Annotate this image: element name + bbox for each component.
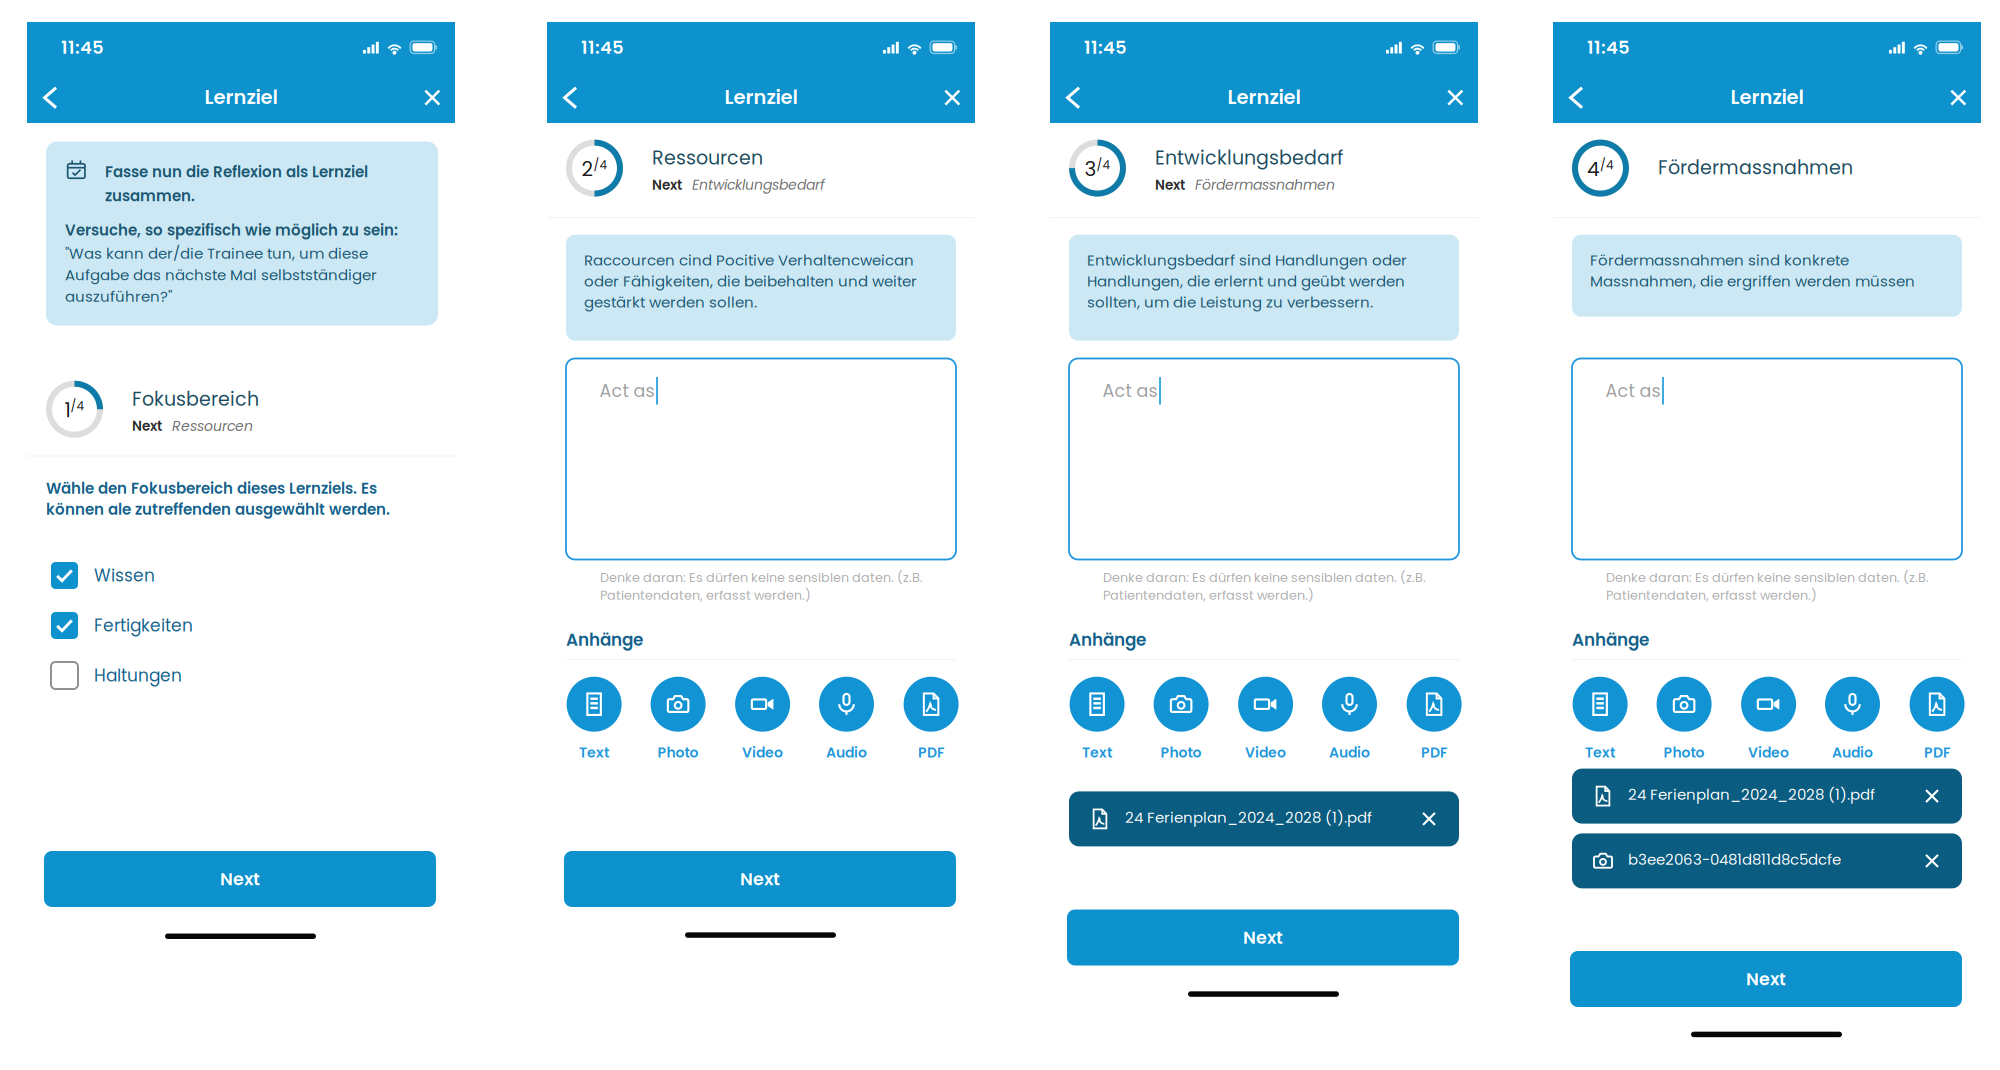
staticText: Entwicklungsbedarf sind Handlungen oder … — [1087, 250, 1407, 313]
staticText: Audio — [1329, 743, 1370, 762]
staticText: /4 — [1600, 157, 1614, 173]
staticText: Versuche, so spezifisch wie möglich zu s… — [65, 220, 398, 241]
staticText: Act as — [1103, 379, 1158, 403]
staticText: Next — [1155, 175, 1185, 194]
button[interactable]: Text — [1057, 676, 1137, 763]
button[interactable]: PDF — [1897, 676, 1977, 763]
staticText: 24 Ferienplan_2024_2028 (1).pdf — [1628, 784, 1875, 805]
staticText: Denke daran: Es dürfen keine sensiblen d… — [1103, 568, 1426, 604]
staticText: Wähle den Fokusbereich dieses Lernziels.… — [46, 478, 390, 520]
button[interactable]: Back — [28, 76, 72, 120]
button[interactable]: Audio — [1812, 676, 1892, 763]
staticText: Video — [1245, 743, 1286, 762]
staticText: Lernziel — [204, 83, 277, 111]
staticText: Text — [579, 743, 609, 762]
button[interactable]: Photo — [1141, 676, 1221, 763]
staticText: Photo — [1664, 743, 1705, 762]
button[interactable]: Photo — [638, 676, 718, 763]
staticText: Lernziel — [1227, 83, 1300, 111]
staticText: PDF — [1421, 743, 1447, 762]
staticText: /4 — [70, 398, 84, 414]
staticText: Entwicklungsbedarf — [692, 175, 825, 195]
staticText: 11:45 — [61, 35, 104, 60]
staticText: Next — [740, 867, 780, 891]
staticText: Video — [742, 743, 783, 762]
staticText: Audio — [826, 743, 867, 762]
staticText: Next — [132, 417, 162, 435]
button[interactable]: Next — [564, 851, 956, 907]
staticText: Next — [1243, 925, 1283, 950]
button[interactable]: Audio — [1309, 676, 1389, 763]
button[interactable]: PDF — [1394, 676, 1474, 763]
staticText: Text — [1082, 743, 1112, 762]
staticText: Raccourcen cind Pocitive Verhaltencweica… — [584, 250, 917, 313]
staticText: Fördermassnahmen — [1658, 154, 1853, 181]
staticText: 1 — [64, 396, 70, 424]
staticText: Entwicklungsbedarf — [1155, 145, 1343, 171]
staticText: Fokusbereich — [132, 386, 259, 412]
button[interactable]: Remove attachment — [1414, 809, 1444, 829]
staticText: 3 — [1084, 155, 1096, 183]
staticText: "Was kann der/die Trainee tun, um diese … — [65, 243, 377, 307]
button[interactable]: Back — [548, 76, 592, 120]
staticText: Act as — [600, 379, 655, 403]
staticText: 11:45 — [1587, 35, 1630, 60]
button[interactable]: Haltungen — [51, 653, 381, 697]
button[interactable]: Text — [554, 676, 634, 763]
staticText: Next — [652, 175, 682, 194]
button[interactable]: Next — [1067, 909, 1459, 965]
staticText: Lernziel — [724, 83, 797, 111]
button[interactable]: Next — [1570, 951, 1962, 1007]
staticText: b3ee2063-0481d811d8c5dcfe — [1628, 849, 1841, 870]
staticText: Video — [1748, 743, 1789, 762]
button[interactable]: Close — [410, 76, 454, 120]
button[interactable]: Wissen — [51, 553, 381, 597]
staticText: Text — [1585, 743, 1615, 762]
button[interactable]: Back — [1051, 76, 1095, 120]
staticText: Lernziel — [1730, 83, 1803, 111]
staticText: /4 — [593, 157, 607, 173]
button[interactable]: Close — [1936, 76, 1980, 120]
staticText: Ressourcen — [652, 145, 763, 171]
staticText: Fasse nun die Reflexion als Lernziel zus… — [105, 161, 368, 206]
button[interactable]: Next — [44, 851, 436, 907]
staticText: Photo — [1161, 743, 1202, 762]
button[interactable]: Remove attachment — [1917, 851, 1947, 871]
staticText: Fertigkeiten — [94, 614, 193, 637]
staticText: Fördermassnahmen — [1195, 175, 1335, 195]
staticText: Denke daran: Es dürfen keine sensiblen d… — [1606, 568, 1929, 604]
staticText: Audio — [1832, 743, 1873, 762]
button[interactable]: Close — [930, 76, 974, 120]
staticText: Wissen — [94, 564, 155, 587]
staticText: 4 — [1587, 155, 1600, 183]
button[interactable]: Remove attachment — [1917, 786, 1947, 806]
button[interactable]: Photo — [1644, 676, 1724, 763]
staticText: /4 — [1096, 157, 1110, 173]
staticText: 11:45 — [581, 35, 624, 60]
staticText: Haltungen — [94, 664, 182, 687]
staticText: PDF — [918, 743, 944, 762]
staticText: Anhänge — [566, 628, 643, 651]
staticText: Next — [220, 867, 260, 891]
staticText: 2 — [581, 155, 593, 183]
staticText: Photo — [658, 743, 699, 762]
staticText: PDF — [1924, 743, 1950, 762]
button[interactable]: Text — [1560, 676, 1640, 763]
staticText: Anhänge — [1069, 628, 1146, 651]
button[interactable]: Fertigkeiten — [51, 603, 381, 647]
staticText: 11:45 — [1084, 35, 1127, 60]
staticText: Anhänge — [1572, 628, 1649, 651]
button[interactable]: Back — [1554, 76, 1598, 120]
button[interactable]: Video — [1729, 676, 1809, 763]
staticText: Next — [1746, 967, 1786, 991]
button[interactable]: Video — [1226, 676, 1306, 763]
button[interactable]: Audio — [806, 676, 886, 763]
staticText: Denke daran: Es dürfen keine sensiblen d… — [600, 568, 923, 604]
staticText: Fördermassnahmen sind konkrete Massnahme… — [1590, 250, 1915, 292]
button[interactable]: PDF — [891, 676, 971, 763]
staticText: Ressourcen — [172, 416, 253, 436]
button[interactable]: Video — [723, 676, 803, 763]
button[interactable]: Close — [1433, 76, 1477, 120]
staticText: 24 Ferienplan_2024_2028 (1).pdf — [1125, 807, 1372, 828]
staticText: Act as — [1606, 379, 1661, 403]
